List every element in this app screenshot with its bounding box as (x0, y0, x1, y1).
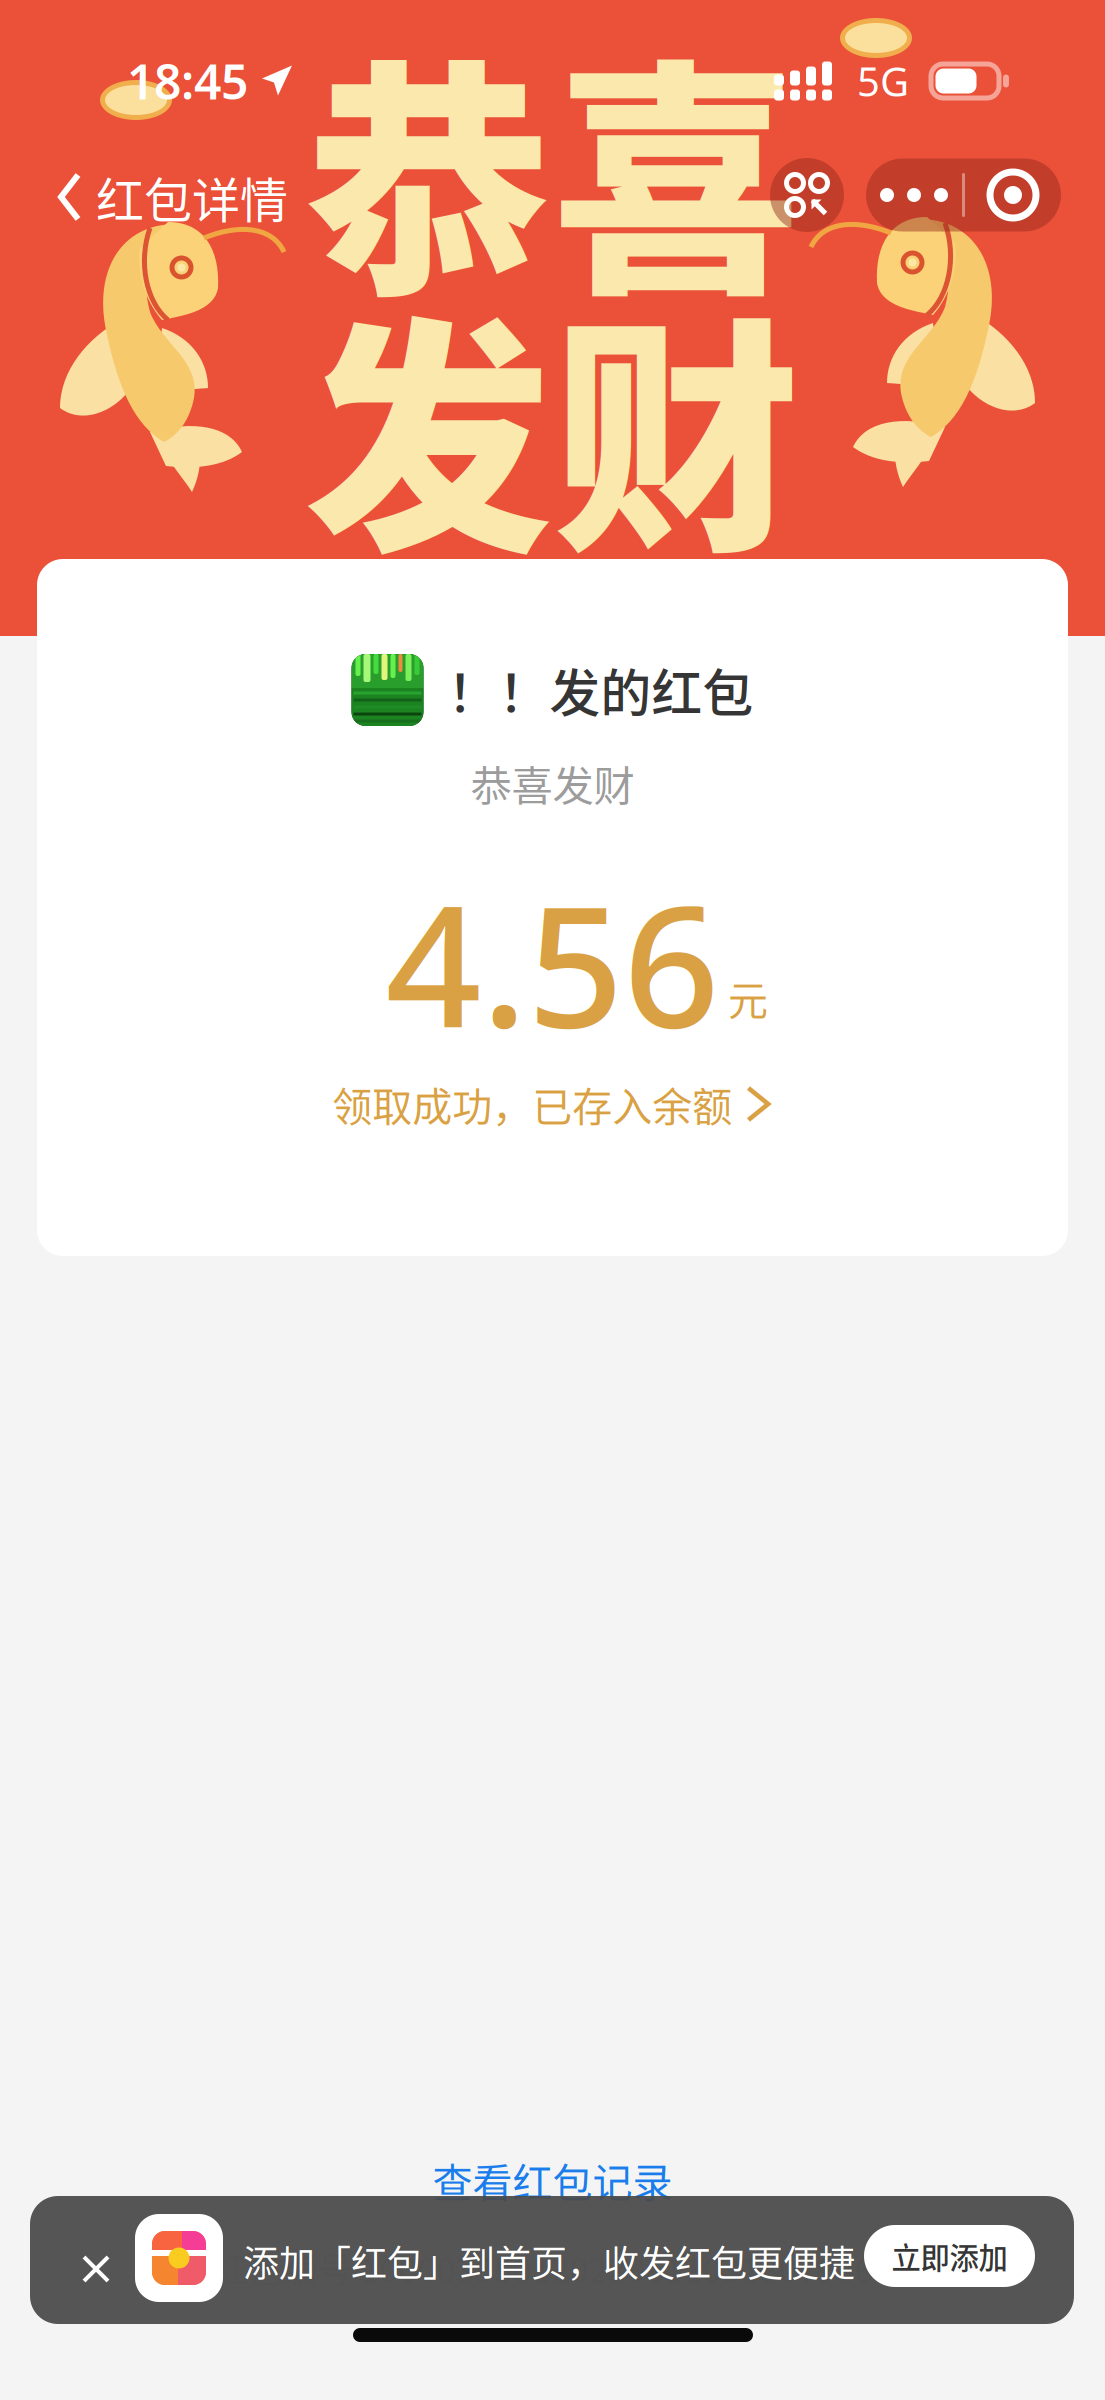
staticText: 立即添加 (891, 2235, 1007, 2277)
staticText: 红包编号 1000039501202306110318079363 (212, 2243, 892, 2293)
staticText: 发财 (304, 242, 800, 601)
button[interactable]: More options (866, 158, 1061, 231)
button[interactable]: 红包详情 (42, 155, 302, 239)
staticText: 4.56 (385, 848, 719, 1076)
button[interactable]: 立即添加 (864, 2225, 1035, 2287)
button[interactable]: 领取成功，已存入余额 (0, 1068, 1105, 1140)
staticText: 元 (728, 969, 768, 1027)
button[interactable]: Close (68, 2241, 124, 2297)
button[interactable]: Scan (770, 158, 844, 232)
staticText: 18:45 (127, 48, 248, 114)
staticText: 恭喜 (304, 0, 800, 343)
staticText: 恭喜发财 (470, 753, 634, 813)
staticText: ！！发的红包 (447, 653, 753, 727)
staticText: 红包详情 (96, 162, 288, 232)
staticText: 5G (857, 54, 909, 108)
staticText: 添加「红包」到首页，收发红包更便捷 (243, 2235, 855, 2287)
button[interactable]: 查看红包记录 (0, 2148, 1105, 2212)
staticText: 查看红包记录 (432, 2151, 672, 2209)
staticText: 领取成功，已存入余额 (332, 1075, 732, 1133)
